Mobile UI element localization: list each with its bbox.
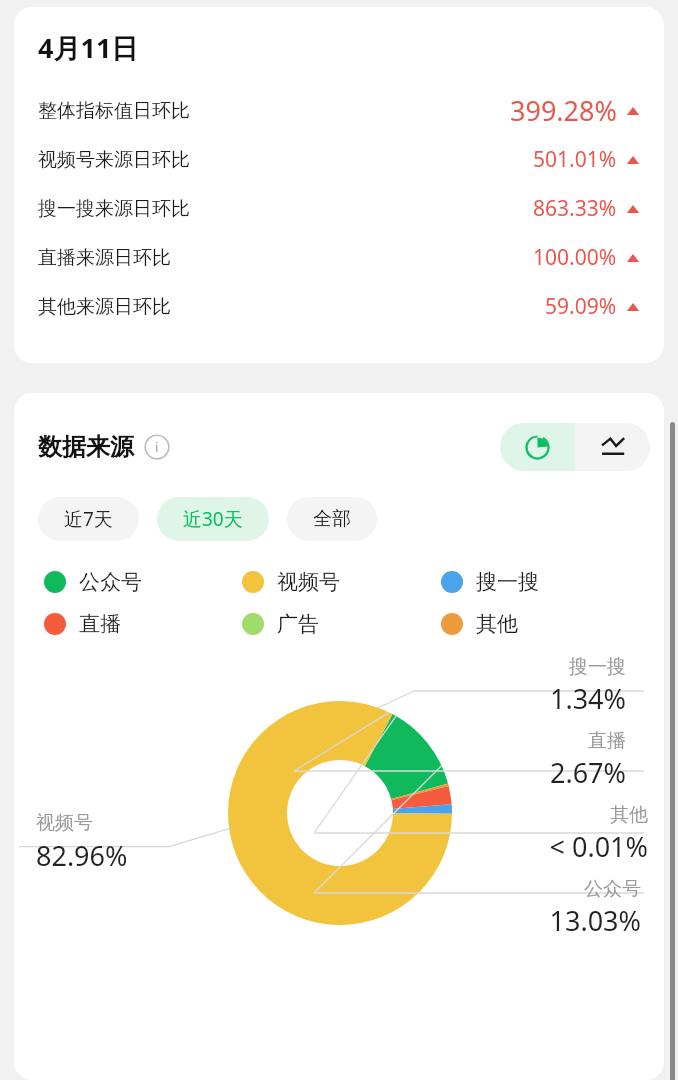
- button[interactable]: 公众号: [44, 569, 242, 595]
- staticText: 100.00%: [533, 243, 617, 272]
- staticText: 501.01%: [533, 145, 617, 174]
- staticText: 公众号: [79, 569, 142, 595]
- staticText: 近7天: [64, 506, 113, 532]
- button[interactable]: Pie chart: [500, 423, 575, 471]
- staticText: 数据来源: [38, 432, 134, 462]
- staticText: 视频号: [36, 811, 93, 835]
- staticText: 搜一搜: [476, 569, 539, 595]
- button[interactable]: 近30天: [157, 497, 269, 541]
- button[interactable]: 其他: [549, 803, 648, 865]
- staticText: 其他: [476, 611, 518, 637]
- staticText: i: [155, 438, 159, 456]
- button[interactable]: Line chart: [575, 423, 650, 471]
- button[interactable]: 广告: [242, 611, 441, 637]
- button[interactable]: 搜一搜: [549, 655, 626, 717]
- button[interactable]: 整体指标值日环比: [38, 86, 640, 135]
- button[interactable]: 近7天: [38, 497, 139, 541]
- staticText: 2.67%: [549, 754, 626, 791]
- staticText: 其他: [610, 803, 648, 827]
- staticText: 公众号: [584, 877, 641, 901]
- staticText: 全部: [313, 507, 351, 531]
- button[interactable]: 全部: [287, 497, 377, 541]
- staticText: 1.34%: [549, 680, 626, 717]
- staticText: 直播: [588, 729, 626, 753]
- staticText: 82.96%: [36, 837, 128, 874]
- staticText: 13.03%: [549, 902, 641, 939]
- button[interactable]: 其他: [441, 611, 640, 637]
- staticText: 视频号来源日环比: [38, 148, 190, 172]
- staticText: 搜一搜: [569, 655, 626, 679]
- button[interactable]: 搜一搜: [441, 569, 640, 595]
- button[interactable]: 搜一搜来源日环比: [38, 184, 640, 233]
- button[interactable]: 直播来源日环比: [38, 233, 640, 282]
- button[interactable]: 其他来源日环比: [38, 282, 640, 331]
- staticText: 其他来源日环比: [38, 295, 171, 319]
- staticText: 搜一搜来源日环比: [38, 197, 190, 221]
- staticText: 399.28%: [510, 92, 617, 129]
- staticText: 近30天: [183, 506, 243, 532]
- staticText: < 0.01%: [549, 828, 648, 865]
- staticText: 863.33%: [533, 194, 617, 223]
- button[interactable]: 直播: [549, 729, 626, 791]
- staticText: 4月11日: [38, 29, 139, 66]
- button[interactable]: 公众号: [549, 877, 641, 939]
- staticText: 整体指标值日环比: [38, 99, 190, 123]
- staticText: 59.09%: [545, 292, 617, 321]
- button[interactable]: 视频号来源日环比: [38, 135, 640, 184]
- staticText: 直播: [79, 611, 121, 637]
- button[interactable]: Info: [144, 434, 170, 460]
- staticText: 广告: [277, 611, 319, 637]
- button[interactable]: 视频号: [242, 569, 441, 595]
- staticText: 直播来源日环比: [38, 246, 171, 270]
- staticText: 视频号: [277, 569, 340, 595]
- button[interactable]: 视频号: [36, 811, 128, 874]
- button[interactable]: 直播: [44, 611, 242, 637]
